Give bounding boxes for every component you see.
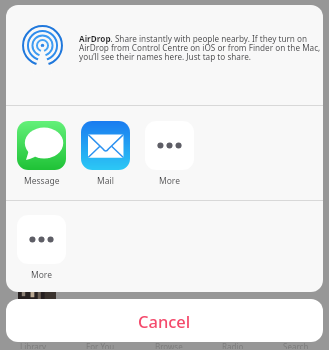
- staticText: AirDrop. Share instantly with people nea…: [79, 33, 323, 62]
- staticText: Library: [20, 341, 47, 349]
- staticText: Search: [283, 341, 309, 349]
- button[interactable]: Mail: [81, 121, 130, 187]
- button[interactable]: Cancel: [6, 299, 323, 342]
- button[interactable]: More: [17, 215, 66, 281]
- other: AirDrop: [22, 25, 63, 66]
- staticText: Browse: [155, 341, 183, 349]
- button[interactable]: More: [145, 121, 194, 187]
- staticText: Cancel: [138, 310, 191, 332]
- staticText: Radio: [222, 341, 244, 349]
- staticText: More: [159, 175, 180, 187]
- staticText: More: [31, 269, 52, 281]
- staticText: Message: [24, 175, 60, 187]
- staticText: Mail: [97, 175, 114, 187]
- staticText: For You: [86, 341, 115, 349]
- button[interactable]: Message: [17, 121, 66, 187]
